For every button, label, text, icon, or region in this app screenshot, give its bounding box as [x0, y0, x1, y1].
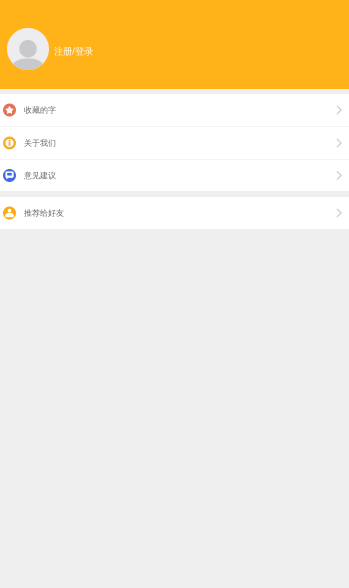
staticText: 意见建议: [24, 170, 56, 181]
button[interactable]: 意见建议: [0, 160, 349, 191]
staticText: 推荐给好友: [24, 208, 64, 218]
staticText: 收藏的字: [24, 105, 56, 115]
button[interactable]: 推荐给好友: [0, 197, 349, 229]
button[interactable]: 关于我们: [0, 127, 349, 159]
staticText: 注册/登录: [54, 45, 93, 57]
button[interactable]: 注册/登录: [0, 0, 349, 89]
staticText: 关于我们: [24, 138, 56, 148]
button[interactable]: 收藏的字: [0, 94, 349, 126]
